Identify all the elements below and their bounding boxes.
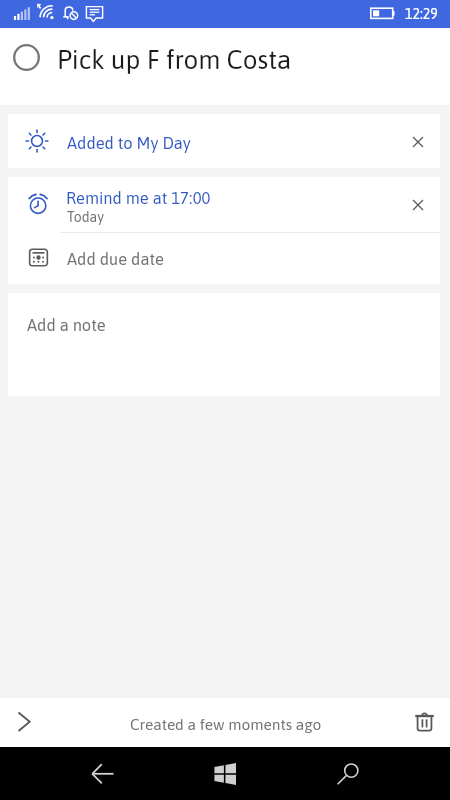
staticText: Pick up F from Costa	[57, 45, 292, 75]
button[interactable]: Mark as completed	[13, 44, 40, 71]
button[interactable]: Start	[205, 754, 245, 794]
staticText: Today	[67, 209, 104, 225]
button[interactable]: Remove reminder	[404, 191, 432, 219]
staticText: Added to My Day	[67, 134, 191, 153]
button[interactable]: Added to My Day	[8, 114, 440, 168]
button[interactable]: Add due date	[8, 233, 440, 284]
button[interactable]: Back	[83, 755, 123, 795]
button[interactable]: Delete task	[404, 701, 444, 741]
staticText: 12:29	[405, 6, 438, 22]
button[interactable]: Remove from My Day	[404, 128, 432, 156]
staticText: Created a few moments ago	[130, 716, 322, 734]
staticText: Add due date	[67, 250, 164, 269]
staticText: Add a note	[27, 316, 106, 335]
button[interactable]: Remind me at 17:00	[8, 177, 440, 232]
button[interactable]: Show sub steps	[5, 702, 45, 742]
button[interactable]: Search	[329, 754, 369, 794]
button[interactable]: Add a note	[8, 293, 440, 396]
staticText: Remind me at 17:00	[66, 189, 211, 208]
